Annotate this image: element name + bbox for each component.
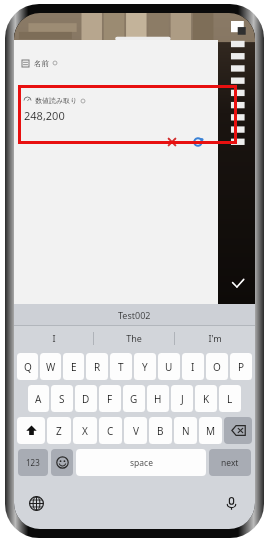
button[interactable]: O — [206, 353, 228, 380]
button[interactable]: I — [14, 326, 93, 350]
staticText: next — [221, 457, 239, 469]
button[interactable]: The — [94, 326, 174, 350]
staticText: I — [191, 360, 195, 374]
button[interactable]: Clear — [166, 136, 178, 148]
button[interactable]: next — [209, 449, 251, 476]
button[interactable]: E — [63, 353, 84, 380]
staticText: D — [82, 392, 90, 406]
button[interactable]: space — [76, 449, 206, 476]
staticText: J — [181, 392, 184, 406]
button[interactable]: Voice input — [221, 493, 241, 513]
staticText: The — [126, 332, 142, 344]
button[interactable]: Retry — [192, 136, 204, 148]
button[interactable]: Y — [134, 353, 156, 380]
staticText: 名前 — [34, 59, 49, 68]
button[interactable]: A — [28, 385, 49, 412]
staticText: I — [52, 332, 56, 344]
button[interactable]: Z — [47, 417, 71, 444]
button[interactable]: K — [195, 385, 217, 412]
staticText: 123 — [26, 457, 40, 468]
staticText: S — [59, 392, 65, 406]
staticText: 248,200 — [24, 108, 65, 123]
button[interactable]: 数値読み取り — [14, 90, 218, 148]
button[interactable]: W — [40, 353, 61, 380]
staticText: B — [157, 424, 164, 438]
button[interactable]: X — [73, 417, 97, 444]
staticText: F — [107, 392, 113, 406]
button[interactable]: V — [124, 417, 147, 444]
button[interactable]: P — [230, 353, 252, 380]
button[interactable]: R — [86, 353, 108, 380]
button[interactable]: T — [110, 353, 132, 380]
staticText: Q — [24, 360, 32, 374]
button[interactable]: D — [75, 385, 97, 412]
button[interactable]: Q — [17, 353, 38, 380]
button[interactable]: Change keyboard — [26, 493, 46, 513]
staticText: H — [154, 392, 162, 406]
staticText: K — [203, 392, 210, 406]
staticText: I'm — [208, 332, 222, 344]
button[interactable]: M — [199, 417, 222, 444]
staticText: T — [118, 360, 124, 374]
staticText: R — [94, 360, 101, 374]
button[interactable]: N — [174, 417, 197, 444]
staticText: O — [213, 360, 221, 374]
staticText: P — [238, 360, 245, 374]
button[interactable]: G — [123, 385, 145, 412]
button[interactable]: I — [182, 353, 204, 380]
staticText: Z — [56, 424, 62, 438]
button[interactable]: Confirm — [229, 274, 247, 292]
staticText: X — [82, 424, 88, 438]
button[interactable]: U — [158, 353, 180, 380]
button[interactable]: Emoji — [51, 449, 73, 476]
staticText: Test002 — [118, 309, 151, 321]
button[interactable]: C — [99, 417, 122, 444]
staticText: E — [71, 360, 77, 374]
button[interactable]: 123 — [18, 449, 48, 476]
staticText: U — [165, 360, 173, 374]
staticText: V — [133, 424, 139, 438]
button[interactable]: H — [147, 385, 169, 412]
staticText: A — [35, 392, 42, 406]
button[interactable]: 名前 — [14, 50, 218, 76]
button[interactable]: Picture in picture — [231, 21, 247, 37]
staticText: C — [107, 424, 114, 438]
staticText: W — [46, 360, 56, 374]
button[interactable]: Shift — [17, 417, 45, 444]
staticText: G — [130, 392, 138, 406]
button[interactable]: I'm — [175, 326, 255, 350]
button[interactable]: B — [149, 417, 172, 444]
button[interactable]: Backspace — [224, 417, 252, 444]
staticText: L — [227, 392, 233, 406]
button[interactable]: J — [171, 385, 193, 412]
button[interactable]: L — [219, 385, 241, 412]
staticText: N — [182, 424, 190, 438]
staticText: M — [206, 424, 216, 438]
staticText: space — [130, 457, 153, 469]
button[interactable]: S — [51, 385, 73, 412]
button[interactable]: F — [99, 385, 121, 412]
staticText: Y — [142, 360, 148, 374]
staticText: 数値読み取り — [35, 96, 78, 105]
